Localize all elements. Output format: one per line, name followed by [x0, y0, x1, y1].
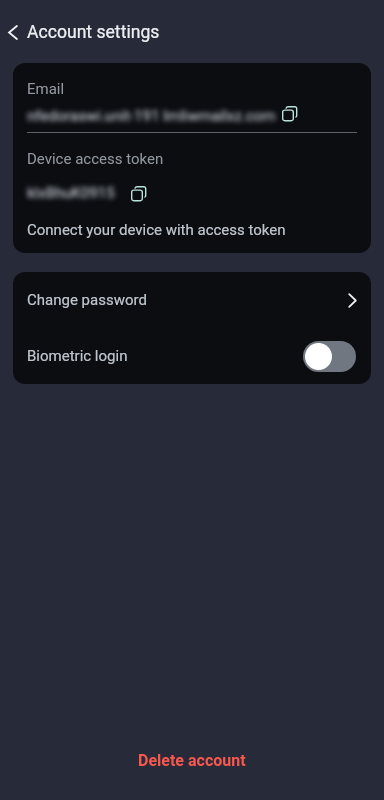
- staticText: Device access token: [27, 150, 164, 168]
- staticText: klxBhuK0915: [27, 184, 115, 202]
- staticText: Delete account: [138, 751, 246, 770]
- staticText: Account settings: [27, 22, 160, 43]
- button[interactable]: Copy: [127, 182, 150, 205]
- staticText: nfedoraswi.unit-191 lmliwmailxz.com: [27, 107, 276, 125]
- button[interactable]: Biometric login: [13, 328, 371, 384]
- staticText: Email: [27, 80, 65, 98]
- staticText: Biometric login: [27, 347, 128, 365]
- button[interactable]: Back: [0, 10, 26, 54]
- staticText: Change password: [27, 291, 147, 309]
- button[interactable]: Delete account: [0, 743, 384, 777]
- staticText: Connect your device with access token: [27, 221, 286, 239]
- button[interactable]: Copy: [278, 102, 301, 125]
- button[interactable]: Change password: [13, 272, 371, 328]
